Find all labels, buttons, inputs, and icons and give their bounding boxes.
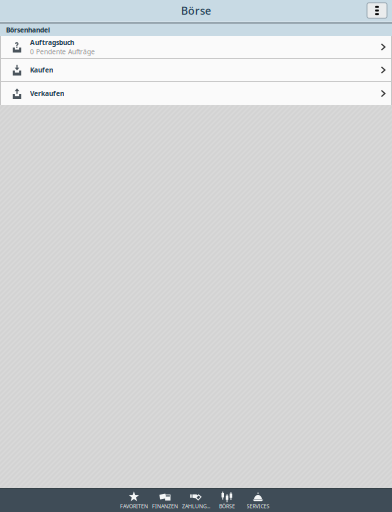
button[interactable]: FINANZEN	[149, 489, 180, 512]
staticText: ZAHLUNG...	[182, 503, 210, 510]
staticText: Börse	[181, 3, 211, 18]
button[interactable]: SERVICES	[242, 489, 273, 512]
staticText: Börsenhandel	[6, 26, 50, 34]
staticText: FAVORITEN	[120, 503, 148, 510]
button[interactable]: ZAHLUNG...	[180, 489, 211, 512]
button[interactable]: Verkaufen	[1, 82, 391, 105]
staticText: Auftragsbuch	[30, 38, 74, 47]
button[interactable]: Kaufen	[1, 59, 391, 81]
staticText: SERVICES	[246, 503, 269, 510]
staticText: BÖRSE	[219, 503, 235, 510]
staticText: FINANZEN	[152, 503, 178, 510]
button[interactable]: More options	[367, 3, 387, 18]
button[interactable]: Auftragsbuch	[1, 36, 391, 58]
staticText: Kaufen	[30, 66, 53, 74]
staticText: 0 Pendente Aufträge	[30, 47, 95, 56]
staticText: Verkaufen	[30, 89, 64, 98]
button[interactable]: FAVORITEN	[118, 489, 149, 512]
button[interactable]: BÖRSE	[211, 489, 242, 512]
